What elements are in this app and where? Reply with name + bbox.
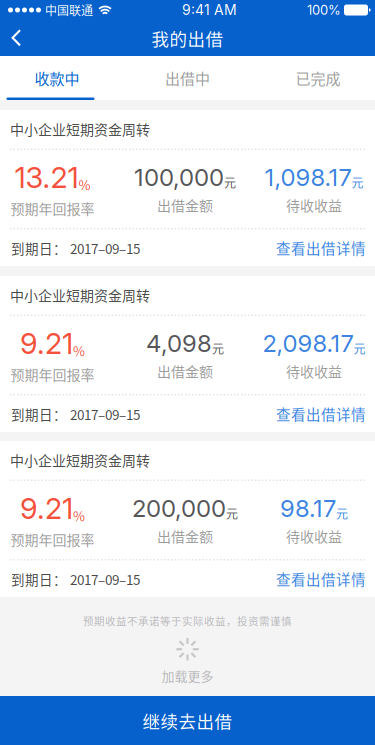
staticText: 出借中 (165, 67, 210, 89)
staticText: 查看出借详情 (276, 568, 366, 589)
staticText: % (78, 175, 90, 194)
staticText: 2,098.17 (262, 329, 353, 358)
staticText: 查看出借详情 (276, 237, 366, 258)
staticText: 待收收益 (286, 195, 342, 215)
staticText: 到期日： 2017–09–15 (11, 569, 140, 589)
staticText: 出借金额 (157, 361, 213, 381)
staticText: 中国联通 (45, 1, 93, 19)
staticText: 继续去出借 (142, 708, 232, 733)
staticText: 98.17 (280, 494, 336, 523)
staticText: 预期年回报率 (10, 529, 94, 549)
button[interactable]: 返回 (0, 20, 55, 56)
button[interactable]: 到期日： 2017–09–15 (0, 395, 375, 432)
staticText: 出借金额 (157, 526, 213, 546)
button[interactable]: 出借中 (125, 56, 250, 100)
staticText: 预期年回报率 (10, 198, 94, 218)
staticText: 中小企业短期资金周转 (10, 285, 150, 305)
staticText: 待收收益 (286, 526, 342, 546)
staticText: 中小企业短期资金周转 (10, 450, 150, 470)
staticText: % (73, 506, 85, 525)
staticText: 1,098.17 (264, 163, 351, 192)
staticText: 9:41 AM (182, 1, 237, 18)
button[interactable]: 已完成 (250, 56, 375, 100)
staticText: 200,000 (132, 494, 226, 523)
button[interactable]: 到期日： 2017–09–15 (0, 560, 375, 597)
staticText: 已完成 (295, 67, 340, 89)
staticText: 待收收益 (286, 361, 342, 381)
staticText: 预期收益不承诺等于实际收益，投资需谨慎 (83, 613, 292, 628)
staticText: 预期年回报率 (10, 364, 94, 384)
button[interactable]: 收款中 (0, 56, 125, 100)
staticText: 查看出借详情 (276, 403, 366, 424)
staticText: 元 (212, 339, 224, 357)
staticText: 元 (353, 339, 365, 357)
staticText: 出借金额 (157, 195, 213, 215)
staticText: % (73, 341, 85, 360)
staticText: 元 (336, 504, 348, 522)
staticText: 加载更多 (161, 666, 213, 685)
staticText: 元 (351, 173, 363, 191)
staticText: 到期日： 2017–09–15 (11, 404, 140, 424)
staticText: 4,098 (146, 329, 212, 358)
staticText: 元 (226, 504, 238, 522)
button[interactable]: 到期日： 2017–09–15 (0, 229, 375, 266)
staticText: 收款中 (34, 67, 79, 89)
staticText: 9.21 (20, 491, 73, 526)
staticText: 9.21 (20, 326, 73, 361)
staticText: 我的出借 (151, 25, 223, 51)
staticText: 元 (224, 173, 236, 191)
staticText: 100,000 (134, 163, 224, 192)
staticText: 13.21 (14, 160, 78, 195)
staticText: 到期日： 2017–09–15 (11, 238, 140, 258)
staticText: 中小企业短期资金周转 (10, 119, 150, 139)
staticText: 100% (307, 2, 341, 18)
button[interactable]: 继续去出借 (0, 696, 375, 745)
